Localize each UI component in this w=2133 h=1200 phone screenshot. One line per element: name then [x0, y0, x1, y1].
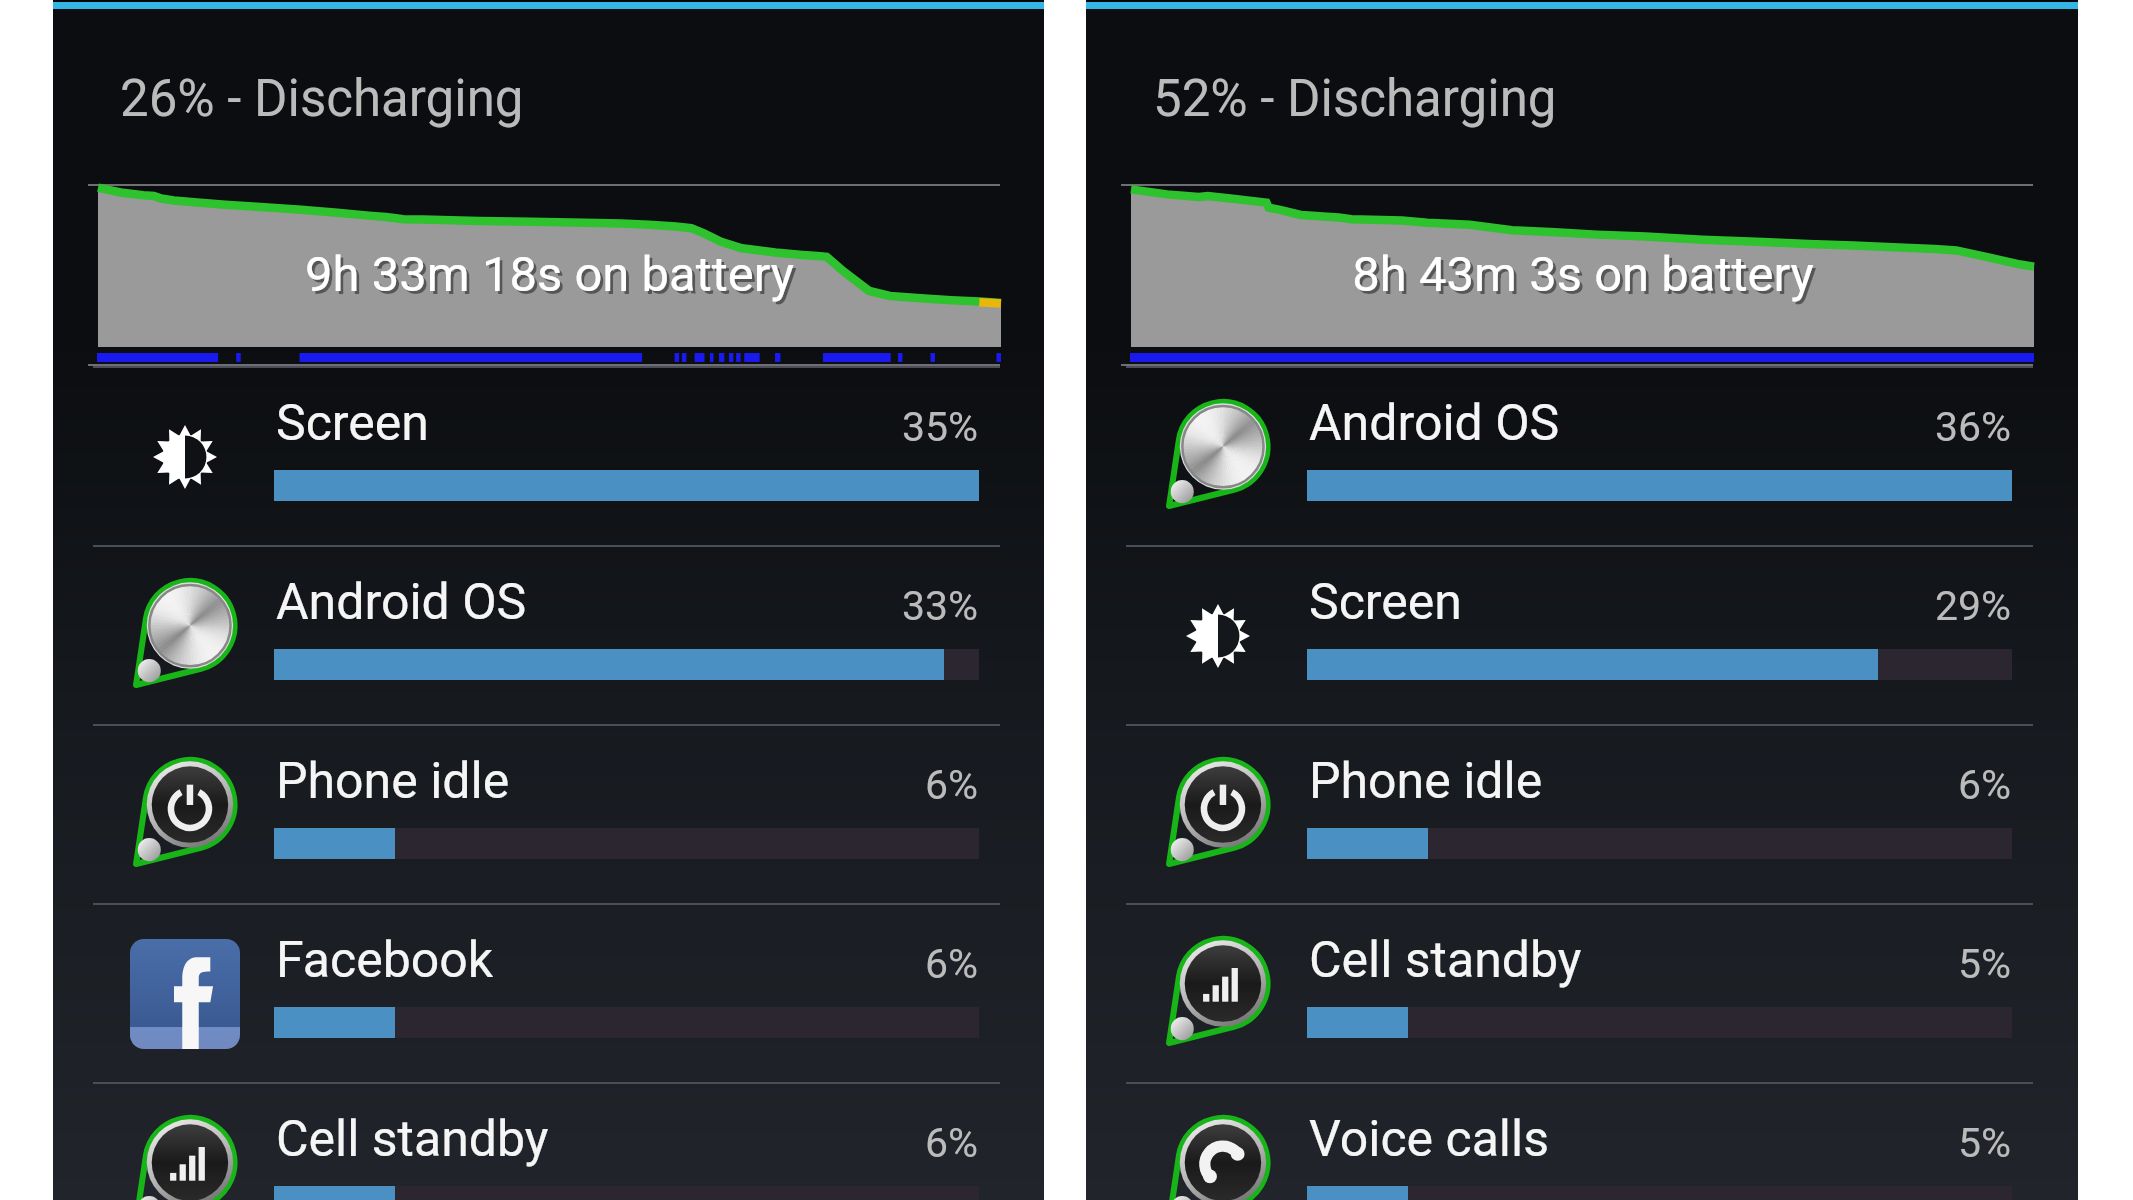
other: Cell standby — [130, 1118, 240, 1200]
other: Android OS — [1163, 402, 1273, 512]
staticText: 35% — [902, 403, 979, 451]
button[interactable]: Cell standby — [53, 1082, 1044, 1200]
other: Voice calls — [1163, 1118, 1273, 1200]
staticText: 9h 33m 18s on battery — [305, 246, 794, 303]
staticText: Phone idle — [1309, 752, 1543, 811]
button[interactable]: Voice calls — [1086, 1082, 2078, 1200]
staticText: 6% — [925, 761, 979, 809]
staticText: 5% — [1958, 1119, 2012, 1167]
button[interactable]: Facebook — [53, 903, 1044, 1082]
staticText: 36% — [1935, 403, 2012, 451]
staticText: Screen — [276, 394, 429, 453]
staticText: 29% — [1935, 582, 2012, 630]
button[interactable]: Cell standby — [1086, 903, 2078, 1082]
other: Screen — [153, 425, 217, 489]
staticText: 9h 33m 18s on battery — [308, 249, 797, 306]
staticText: Android OS — [276, 573, 527, 632]
staticText: Android OS — [1309, 394, 1560, 453]
staticText: Cell standby — [276, 1110, 549, 1169]
staticText: Phone idle — [276, 752, 510, 811]
button[interactable]: Android OS — [1086, 366, 2078, 545]
staticText: 6% — [1958, 761, 2012, 809]
button[interactable]: Android OS — [53, 545, 1044, 724]
other: Phone idle — [130, 760, 240, 870]
other: Screen — [1186, 604, 1250, 668]
staticText: Cell standby — [1309, 931, 1582, 990]
staticText: Voice calls — [1309, 1110, 1549, 1169]
staticText: 6% — [925, 940, 979, 988]
staticText: 52% - Discharging — [1153, 69, 1557, 129]
button[interactable]: Screen — [53, 366, 1044, 545]
staticText: Screen — [1309, 573, 1462, 632]
staticText: 5% — [1958, 940, 2012, 988]
staticText: 8h 43m 3s on battery — [1355, 249, 1817, 306]
staticText: 6% — [925, 1119, 979, 1167]
other: Phone idle — [1163, 760, 1273, 870]
other: Cell standby — [1163, 939, 1273, 1049]
button[interactable]: Screen — [1086, 545, 2078, 724]
staticText: 26% - Discharging — [120, 69, 524, 129]
staticText: 33% — [902, 582, 979, 630]
button[interactable]: Phone idle — [1086, 724, 2078, 903]
staticText: Facebook — [276, 931, 494, 990]
button[interactable]: Phone idle — [53, 724, 1044, 903]
staticText: 8h 43m 3s on battery — [1352, 246, 1814, 303]
other: Facebook — [130, 939, 240, 1049]
other: Android OS — [130, 581, 240, 691]
